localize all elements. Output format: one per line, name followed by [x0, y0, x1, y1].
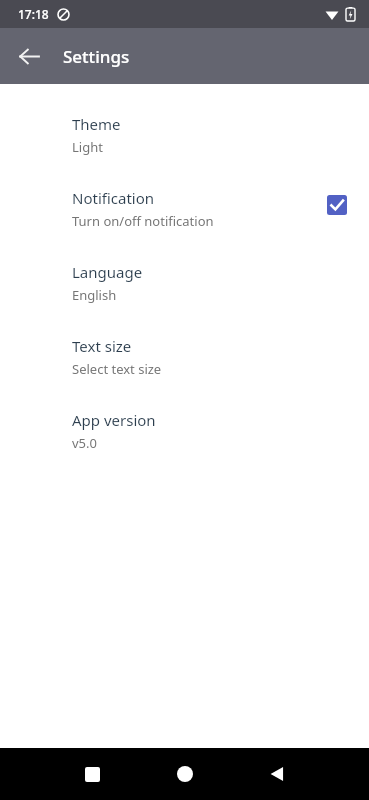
button[interactable]: Language: [0, 256, 369, 330]
button[interactable]: App version: [0, 404, 369, 478]
button[interactable]: Recent apps: [72, 754, 112, 794]
button[interactable]: Back: [8, 35, 50, 77]
staticText: Light: [72, 138, 103, 156]
staticText: v5.0: [72, 434, 97, 452]
staticText: Language: [72, 262, 143, 282]
button[interactable]: Text size: [0, 330, 369, 404]
staticText: 17:18: [18, 6, 49, 22]
staticText: English: [72, 286, 117, 304]
button[interactable]: Home: [165, 754, 205, 794]
staticText: Turn on/off notification: [72, 212, 214, 230]
button[interactable]: Theme: [0, 108, 369, 182]
staticText: Text size: [72, 336, 132, 356]
staticText: Notification: [72, 188, 155, 208]
button[interactable]: Back: [257, 754, 297, 794]
staticText: Select text size: [72, 360, 162, 378]
button[interactable]: Toggle notification: [322, 190, 352, 220]
staticText: Theme: [72, 114, 121, 134]
button[interactable]: Notification: [0, 182, 369, 256]
staticText: App version: [72, 410, 156, 430]
staticText: Settings: [63, 45, 130, 68]
